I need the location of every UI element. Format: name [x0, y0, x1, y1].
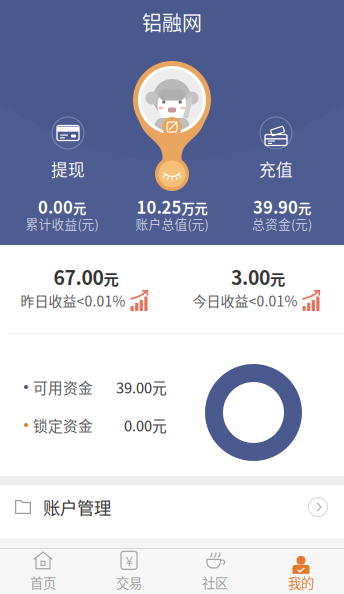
staticText: 元 [73, 198, 86, 218]
staticText: 0.00元 [124, 414, 167, 436]
staticText: 昨日收益<0.01% [20, 290, 125, 311]
button[interactable]: 社区 [172, 549, 258, 593]
button[interactable]: 提现 [38, 117, 98, 181]
staticText: 67.00 [53, 262, 103, 290]
staticText: 39.00元 [116, 376, 167, 398]
staticText: 元 [103, 267, 118, 289]
staticText: 锁定资金 [33, 414, 93, 436]
staticText: 提现 [51, 157, 85, 181]
button[interactable]: 隐藏金额 [155, 157, 189, 191]
button[interactable]: 头像 [133, 61, 211, 139]
staticText: 账户管理 [43, 494, 111, 520]
staticText: ¥ [125, 551, 132, 570]
staticText: 账户总值(元) [135, 214, 208, 233]
staticText: 充值 [259, 157, 293, 181]
staticText: 总资金(元) [252, 214, 312, 233]
staticText: 交易 [116, 573, 142, 592]
staticText: 累计收益(元) [25, 214, 98, 233]
button[interactable]: ¥ [86, 549, 172, 593]
staticText: 39.90 [253, 194, 298, 218]
staticText: 首页 [30, 573, 56, 592]
staticText: 3.00 [231, 262, 270, 290]
staticText: 可用资金 [33, 376, 93, 398]
staticText: 今日收益<0.01% [192, 290, 297, 311]
button[interactable]: 账户管理 [0, 485, 344, 529]
staticText: 10.25 [136, 194, 181, 218]
staticText: 0.00 [38, 194, 73, 218]
staticText: 我的 [288, 573, 314, 592]
staticText: 元 [270, 267, 285, 289]
button[interactable]: 我的 [258, 549, 344, 593]
staticText: 社区 [202, 573, 228, 592]
staticText: 铝融网 [142, 7, 202, 36]
button[interactable]: 首页 [0, 549, 86, 593]
staticText: 元 [298, 198, 311, 218]
button[interactable]: 充值 [246, 117, 306, 181]
staticText: 万元 [181, 198, 207, 218]
